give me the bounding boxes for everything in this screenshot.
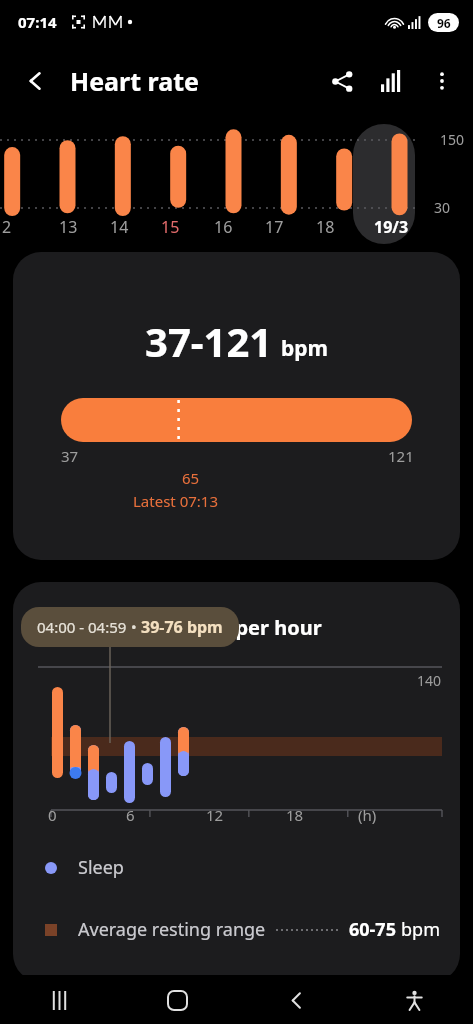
button[interactable]: Home	[153, 976, 201, 1024]
button[interactable]: Average resting range	[45, 917, 440, 942]
staticText: (h)	[358, 805, 377, 825]
staticText: •	[131, 617, 141, 637]
staticText: 04:00 - 04:59	[37, 617, 131, 637]
staticText: 150	[440, 130, 465, 149]
button[interactable]: 15	[161, 216, 180, 238]
button[interactable]: 18	[316, 216, 335, 238]
staticText: 121	[388, 446, 414, 466]
button[interactable]: Sleep	[45, 855, 460, 880]
button[interactable]: Min/max heart rate per hour	[13, 582, 460, 982]
staticText: Latest 07:13	[133, 491, 218, 511]
button[interactable]: More options	[417, 56, 467, 106]
staticText: 07:14	[18, 12, 57, 32]
button[interactable]: Recents	[35, 976, 83, 1024]
button[interactable]: 14	[110, 216, 129, 238]
button[interactable]: 37-121	[13, 252, 460, 560]
staticText: 65	[182, 468, 200, 488]
staticText: 96	[437, 15, 451, 31]
button[interactable]: 2	[2, 216, 12, 238]
staticText: Average resting range	[78, 917, 266, 942]
staticText: 0	[48, 805, 57, 825]
staticText: Min/max heart rate per hour	[35, 614, 322, 641]
staticText: bpm	[281, 334, 329, 363]
staticText: 30	[434, 198, 451, 217]
staticText: 39-76 bpm	[141, 616, 223, 638]
staticText: bpm	[401, 917, 440, 942]
button[interactable]: Back	[10, 55, 62, 107]
button[interactable]: 04:00 - 04:59	[21, 607, 239, 647]
button[interactable]: Accessibility	[390, 976, 438, 1024]
button[interactable]: 13	[59, 216, 78, 238]
button[interactable]: Share	[317, 56, 367, 106]
staticText: 18	[286, 805, 304, 825]
staticText: Heart rate	[70, 64, 199, 98]
staticText: 60-75	[349, 917, 396, 942]
button[interactable]: 19/3	[374, 216, 409, 238]
staticText: 37	[61, 446, 79, 466]
staticText: 6	[126, 805, 135, 825]
button[interactable]: 16	[214, 216, 233, 238]
staticText: 12	[206, 805, 224, 825]
button[interactable]: 17	[265, 216, 284, 238]
staticText: 37-121	[145, 314, 273, 368]
button[interactable]: Back	[272, 976, 320, 1024]
staticText: 140	[417, 671, 442, 690]
button[interactable]: Chart	[367, 56, 417, 106]
staticText: Sleep	[78, 855, 124, 880]
